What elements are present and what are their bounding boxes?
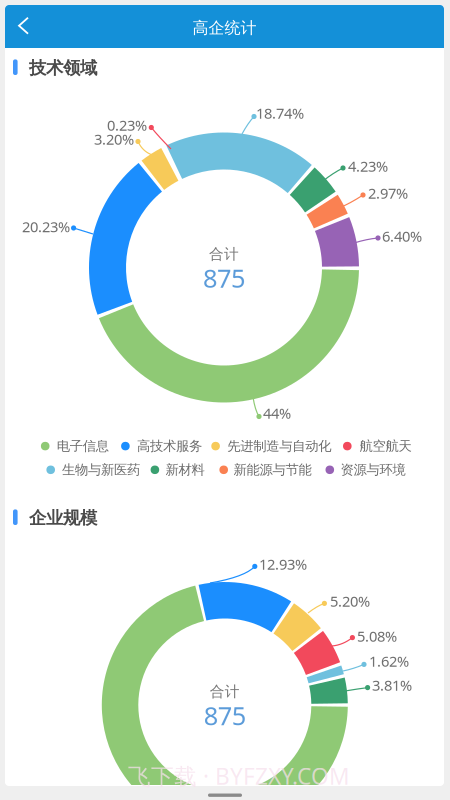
staticText: 20.23% <box>22 217 70 236</box>
staticText: 6.40% <box>382 226 422 246</box>
staticText: 12.93% <box>259 554 307 574</box>
staticText: 44% <box>263 403 291 423</box>
staticText: 电子信息 <box>57 438 109 454</box>
staticText: 合计 <box>210 682 240 700</box>
staticText: 技术领域 <box>29 57 97 79</box>
staticText: 1.62% <box>369 651 409 671</box>
staticText: 3.20% <box>94 129 134 149</box>
staticText: 875 <box>203 261 245 295</box>
staticText: 875 <box>204 699 246 732</box>
staticText: 5.20% <box>330 591 370 611</box>
staticText: 新能源与节能 <box>233 462 311 478</box>
staticText: 合计 <box>209 245 239 263</box>
staticText: 高技术服务 <box>137 438 202 454</box>
staticText: 0.23% <box>107 115 147 135</box>
button[interactable]: Back <box>5 5 51 48</box>
staticText: 新材料 <box>166 462 205 478</box>
staticText: 先进制造与自动化 <box>227 438 331 454</box>
staticText: 高企统计 <box>192 18 256 38</box>
staticText: 企业规模 <box>29 507 97 529</box>
staticText: 5.08% <box>357 626 397 646</box>
staticText: 3.81% <box>372 675 412 695</box>
staticText: 飞下载 · BYFZXY.COM <box>128 761 350 791</box>
staticText: 2.97% <box>368 183 408 203</box>
staticText: 航空航天 <box>360 438 412 454</box>
staticText: 生物与新医药 <box>62 462 140 478</box>
staticText: 4.23% <box>348 156 388 176</box>
staticText: 18.74% <box>256 103 304 123</box>
staticText: 资源与环境 <box>341 462 406 478</box>
